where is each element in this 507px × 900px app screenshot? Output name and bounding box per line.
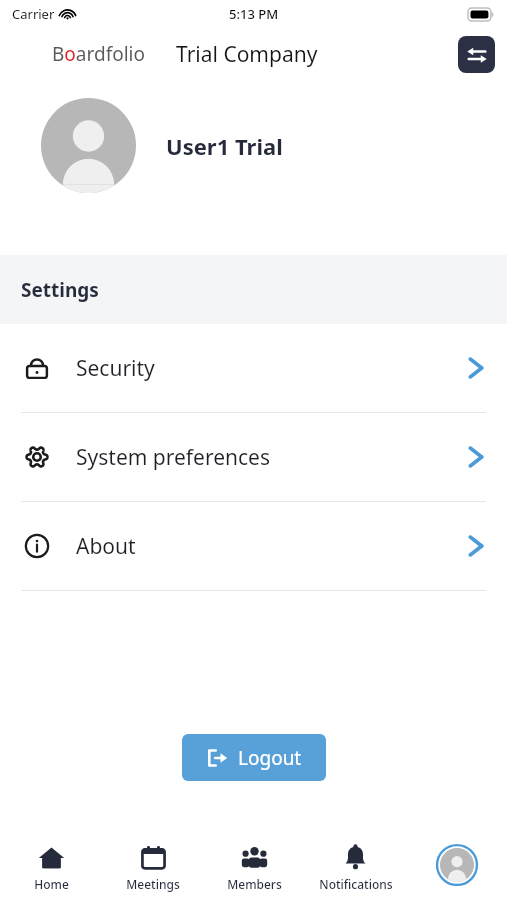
- button[interactable]: Notifications: [305, 835, 406, 900]
- button[interactable]: Members: [204, 835, 305, 900]
- staticText: Meetings: [126, 876, 180, 892]
- staticText: User1 Trial: [166, 131, 283, 161]
- staticText: Home: [34, 876, 69, 892]
- staticText: Trial Company: [176, 40, 318, 69]
- staticText: Members: [227, 876, 282, 892]
- staticText: Logout: [238, 745, 302, 771]
- button[interactable]: Logout: [182, 734, 326, 781]
- staticText: Settings: [21, 277, 99, 303]
- button[interactable]: Switch company: [458, 36, 495, 73]
- staticText: Boardfolio: [52, 41, 145, 67]
- staticText: System preferences: [76, 443, 270, 472]
- staticText: 5:13 PM: [229, 5, 279, 23]
- staticText: Notifications: [319, 876, 393, 892]
- staticText: Security: [76, 354, 155, 383]
- staticText: About: [76, 532, 136, 561]
- button[interactable]: System preferences: [0, 413, 507, 501]
- button[interactable]: Meetings: [102, 835, 204, 900]
- button[interactable]: Security: [0, 324, 507, 412]
- button[interactable]: About: [0, 502, 507, 590]
- button[interactable]: Profile: [406, 835, 507, 900]
- button[interactable]: Home: [0, 835, 102, 900]
- staticText: Carrier: [12, 5, 55, 23]
